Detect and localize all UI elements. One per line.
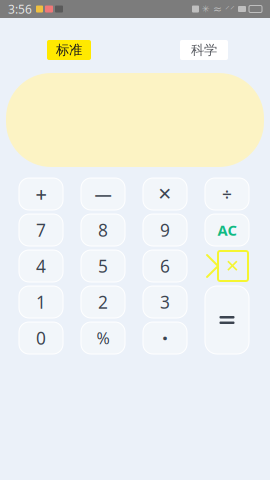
staticText: ✳ [202,4,210,14]
button[interactable]: · [143,322,187,354]
staticText: 0 [36,326,46,349]
button[interactable]: 4 [19,250,63,282]
staticText: ≈ [213,3,222,15]
staticText: + [35,181,46,207]
staticText: · [162,324,168,352]
staticText: AC [217,220,236,240]
staticText: % [96,327,109,349]
staticText: 5 [98,254,108,277]
staticText: 6 [160,254,170,277]
button[interactable]: AC [205,214,249,246]
staticText: ⸍⸍ [225,3,235,15]
staticText: 科学 [191,42,217,58]
staticText: 2 [98,290,108,313]
button[interactable]: 科学 [180,40,228,60]
button[interactable]: ✕ [143,178,187,210]
button[interactable]: 标准 [47,40,91,60]
staticText: ÷ [222,182,232,205]
button[interactable]: — [81,178,125,210]
button[interactable]: Backspace [205,247,249,285]
button[interactable]: % [81,322,125,354]
button[interactable]: 6 [143,250,187,282]
button[interactable]: 1 [19,286,63,318]
button[interactable]: ÷ [205,178,249,210]
staticText: ✕ [225,256,240,276]
staticText: — [94,182,111,205]
staticText: 4 [36,254,46,277]
button[interactable]: 3 [143,286,187,318]
staticText: ✕ [157,184,172,204]
staticText: 3 [160,290,170,313]
staticText: 1 [36,290,46,313]
staticText: 标准 [56,42,82,58]
button[interactable]: + [19,178,63,210]
staticText: 9 [160,218,170,241]
button[interactable]: Equals [205,286,249,354]
button[interactable]: 2 [81,286,125,318]
staticText: 3:56 [8,1,32,17]
staticText: 7 [36,218,46,241]
button[interactable]: 5 [81,250,125,282]
button[interactable]: 0 [19,322,63,354]
button[interactable]: 9 [143,214,187,246]
button[interactable]: 7 [19,214,63,246]
staticText: 8 [98,218,108,241]
button[interactable]: 8 [81,214,125,246]
